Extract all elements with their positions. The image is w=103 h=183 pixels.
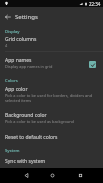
staticText: Colors — [5, 78, 18, 84]
button[interactable]: Recents — [73, 168, 87, 183]
button[interactable]: Back — [1, 10, 15, 24]
staticText: Reset to default colors — [5, 134, 58, 141]
staticText: Background color — [5, 112, 47, 119]
staticText: Grid columns — [5, 36, 37, 43]
button[interactable]: Sync with system — [0, 156, 103, 167]
button[interactable]: App names — [0, 55, 103, 71]
button[interactable]: App color — [0, 86, 103, 106]
staticText: Display — [5, 29, 20, 35]
staticText: 22:34 — [89, 1, 101, 7]
staticText: App color — [5, 86, 28, 93]
staticText: Settings — [15, 13, 38, 21]
staticText: App names — [5, 57, 32, 64]
staticText: Sync with system — [5, 158, 46, 165]
staticText: Pick a color to be used as background — [5, 119, 74, 124]
staticText: Display app names in grid — [5, 64, 53, 69]
staticText: Pick a color to be used for borders, div… — [5, 93, 94, 103]
button[interactable]: Reset to default colors — [0, 132, 103, 143]
button[interactable]: Background color — [0, 112, 103, 126]
button[interactable]: Home — [45, 168, 59, 183]
button[interactable]: Back — [19, 168, 33, 183]
staticText: 4 — [5, 43, 8, 48]
button[interactable]: Grid columns — [0, 36, 103, 50]
staticText: System — [5, 148, 20, 154]
